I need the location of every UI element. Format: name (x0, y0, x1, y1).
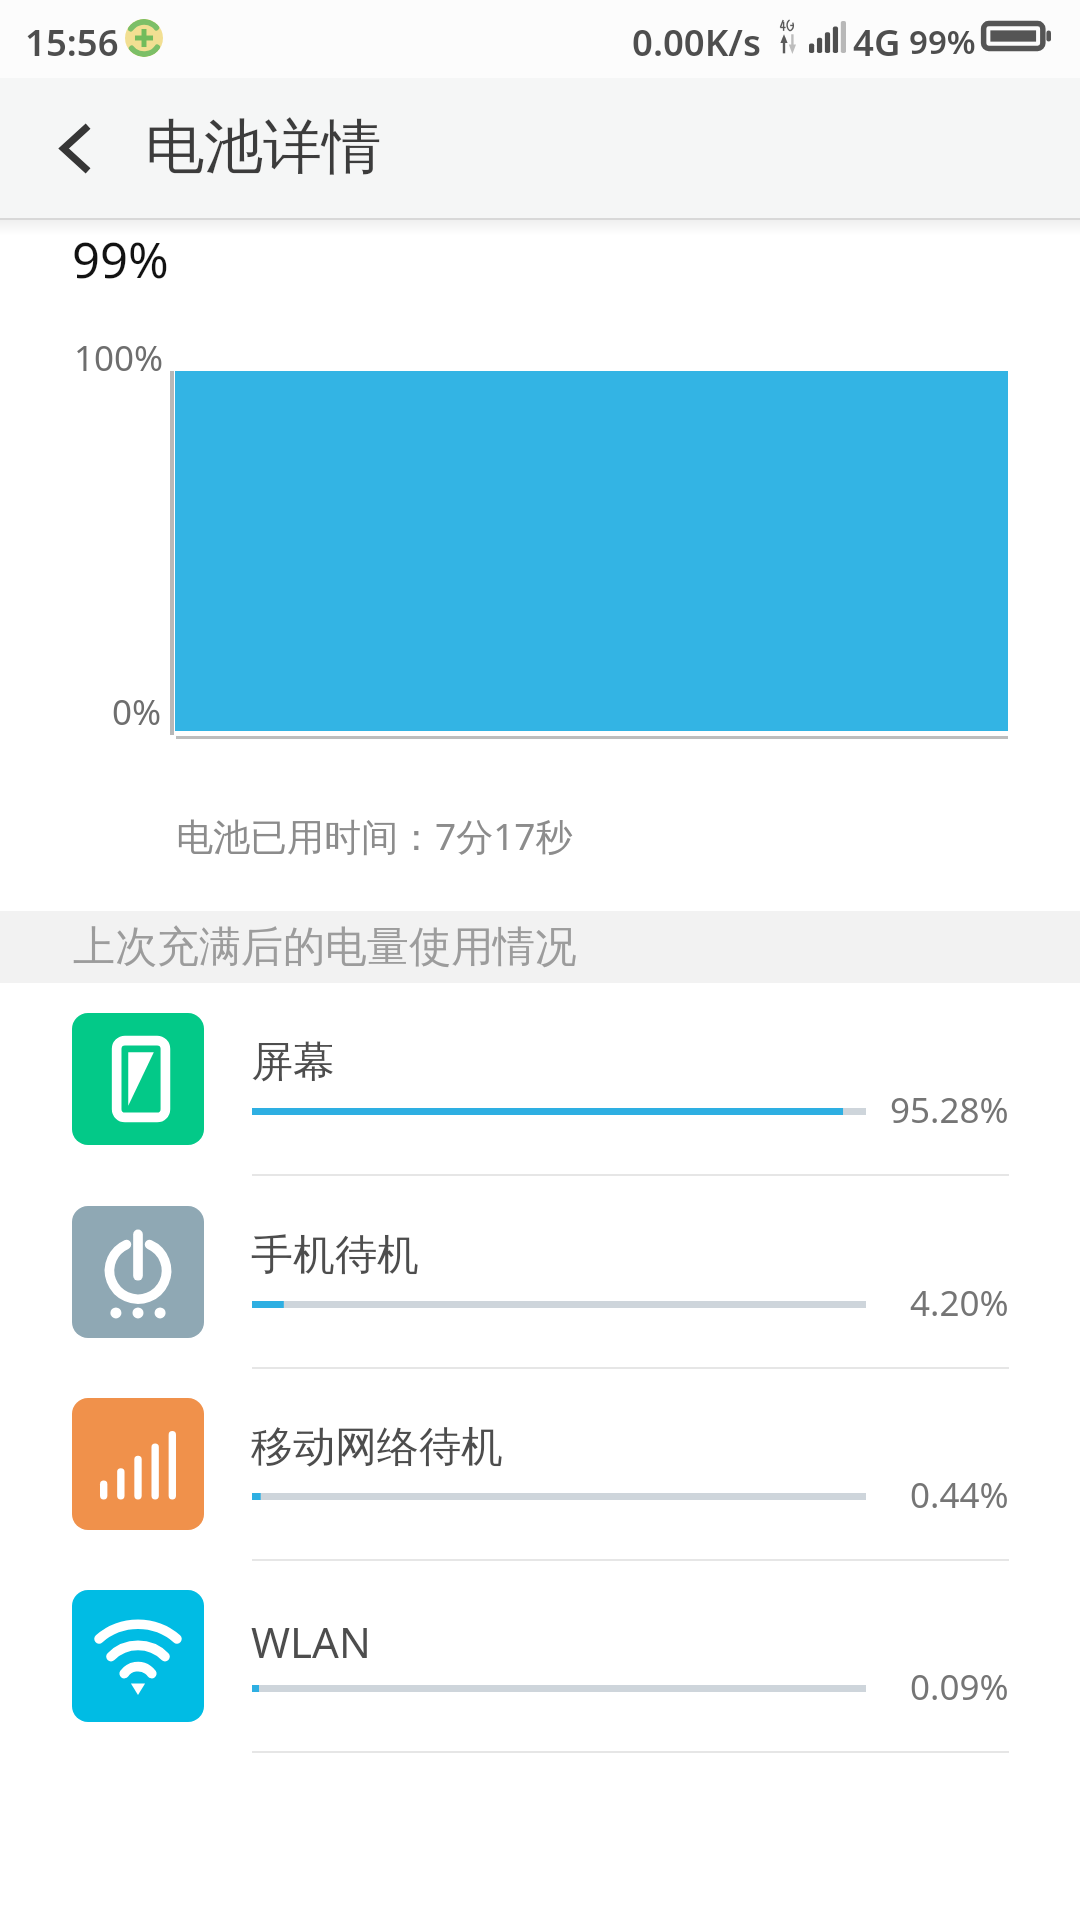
staticText: 15:56 (25, 17, 119, 67)
button[interactable]: 手机待机 (0, 1197, 1080, 1387)
staticText: 电池详情 (145, 110, 381, 184)
staticText: 99% (72, 226, 169, 293)
button[interactable]: 屏幕 (0, 1004, 1080, 1194)
staticText: 4.20% (910, 1279, 1009, 1327)
button[interactable]: Back (16, 95, 132, 201)
staticText: 0% (112, 688, 162, 736)
staticText: 0.44% (910, 1471, 1009, 1519)
staticText: WLAN (251, 1613, 371, 1670)
staticText: 95.28% (890, 1086, 1009, 1134)
staticText: 上次充满后的电量使用情况 (73, 921, 577, 974)
staticText: 手机待机 (251, 1229, 419, 1282)
staticText: 4G (853, 17, 901, 67)
staticText: 100% (74, 334, 164, 382)
button[interactable]: WLAN (0, 1581, 1080, 1771)
button[interactable]: 移动网络待机 (0, 1389, 1080, 1579)
staticText: 99% (909, 19, 976, 64)
staticText: 0.00K/s (632, 17, 761, 67)
staticText: 屏幕 (251, 1036, 335, 1089)
staticText: 移动网络待机 (251, 1421, 503, 1474)
staticText: 电池已用时间：7分17秒 (176, 810, 573, 861)
staticText: 0.09% (910, 1663, 1009, 1711)
